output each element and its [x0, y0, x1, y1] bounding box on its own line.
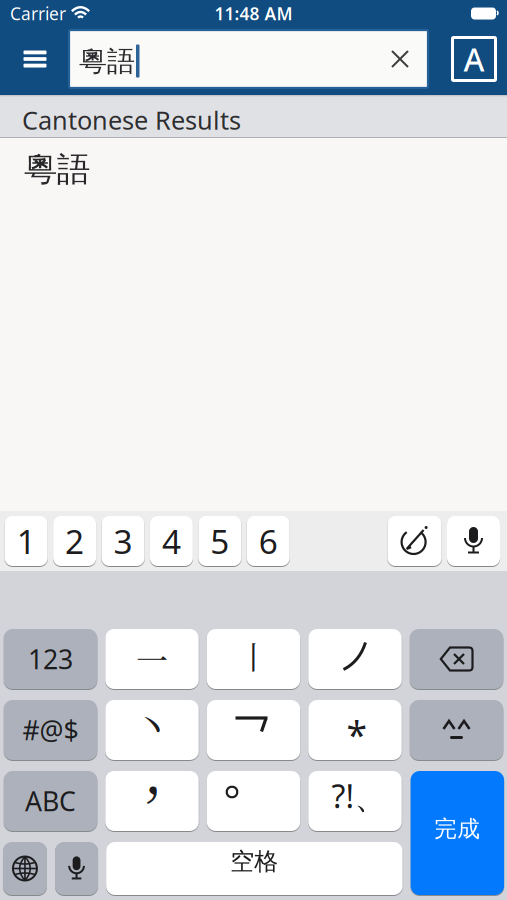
button[interactable]: 丿	[308, 629, 402, 689]
staticText: 一	[136, 636, 168, 682]
staticText: Cantonese Results	[22, 103, 241, 137]
button[interactable]: 6	[247, 516, 290, 566]
staticText: ,	[143, 723, 163, 811]
button[interactable]: Dictation	[447, 516, 500, 566]
button[interactable]: 粵語	[69, 30, 428, 88]
staticText: 1	[17, 519, 36, 563]
staticText: 2	[65, 519, 84, 563]
staticText: Carrier	[10, 2, 66, 25]
button[interactable]: 空格	[106, 842, 402, 895]
button[interactable]: Handwriting input	[388, 516, 442, 566]
button[interactable]: Dictation	[55, 842, 98, 895]
button[interactable]: ABC	[4, 771, 97, 831]
staticText: 丶	[132, 695, 172, 753]
staticText: 3	[113, 519, 132, 563]
button[interactable]: Kaomoji	[410, 700, 503, 760]
button[interactable]: 3	[101, 516, 144, 566]
staticText: 空格	[230, 847, 278, 876]
button[interactable]: 丶	[105, 700, 199, 760]
button[interactable]: *	[308, 700, 402, 760]
button[interactable]: 2	[53, 516, 96, 566]
button[interactable]: ,	[105, 771, 199, 831]
button[interactable]: 粵語	[0, 138, 507, 511]
button[interactable]: Switch to English search	[451, 36, 497, 82]
staticText: #@$	[22, 712, 78, 748]
staticText: A	[463, 38, 484, 80]
staticText: 丨	[237, 633, 269, 679]
staticText: 粵語	[79, 44, 135, 79]
staticText: ABC	[25, 783, 76, 819]
button[interactable]: 完成	[411, 771, 504, 895]
staticText: 6	[259, 519, 278, 563]
button[interactable]: 一	[105, 629, 199, 689]
button[interactable]: 乛	[207, 700, 300, 760]
staticText: *	[346, 710, 367, 759]
button[interactable]: 123	[4, 629, 97, 689]
button[interactable]: 4	[150, 516, 193, 566]
button[interactable]: 丨	[207, 629, 300, 689]
staticText: 5	[210, 519, 229, 563]
button[interactable]: Next keyboard	[3, 842, 47, 895]
staticText: 123	[28, 641, 73, 677]
button[interactable]: #@$	[4, 700, 97, 760]
button[interactable]: 5	[198, 516, 241, 566]
staticText: 4	[162, 519, 181, 563]
button[interactable]: ?!、	[308, 771, 402, 831]
button[interactable]: Clear search	[385, 44, 415, 74]
staticText: 粵語	[24, 149, 90, 190]
button[interactable]: 1	[5, 516, 48, 566]
button[interactable]: Delete	[410, 629, 503, 689]
staticText: ?!、	[331, 775, 386, 817]
button[interactable]: Menu	[12, 25, 58, 93]
button[interactable]: 。	[207, 771, 300, 831]
staticText: 完成	[434, 815, 480, 843]
staticText: 11:48 AM	[214, 2, 292, 25]
